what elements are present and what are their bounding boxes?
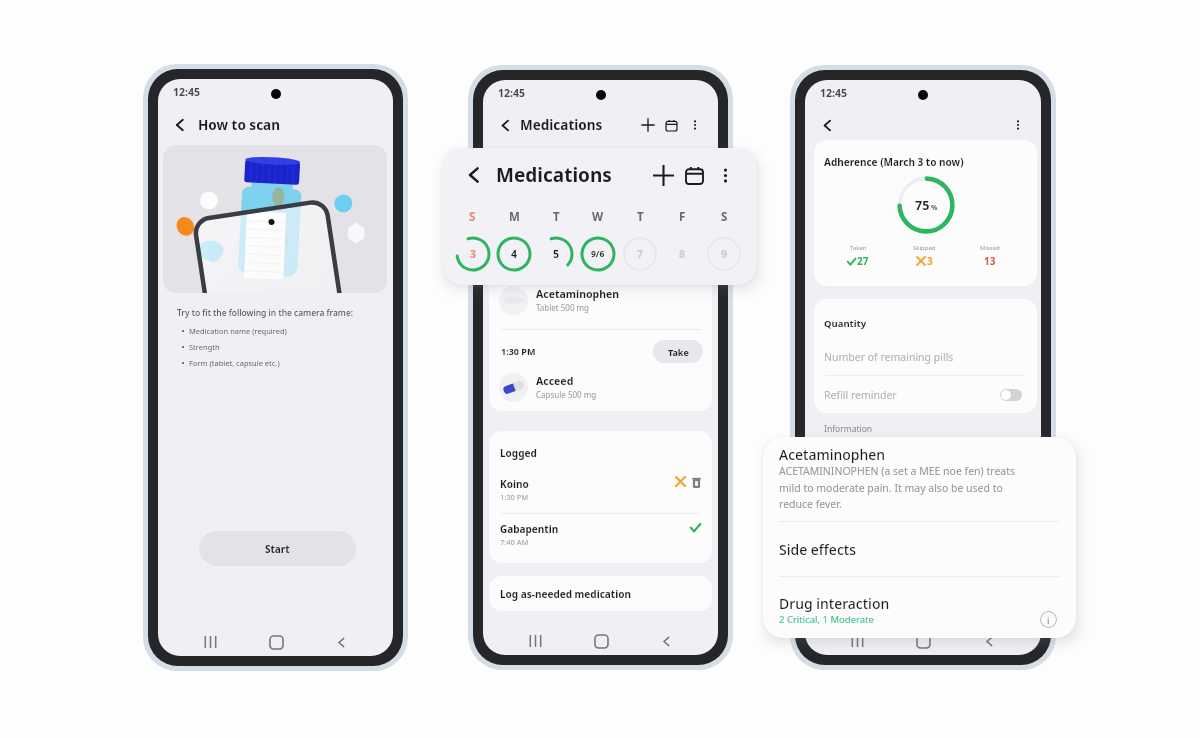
staticText: Taken bbox=[850, 244, 867, 252]
staticText: S bbox=[469, 209, 476, 223]
button[interactable]: Back bbox=[975, 632, 1003, 650]
staticText: 4 bbox=[511, 247, 518, 261]
button[interactable]: Add medication bbox=[654, 166, 673, 185]
staticText: Medications bbox=[520, 116, 603, 134]
staticText: Form (tablet, capsule etc.) bbox=[189, 358, 280, 368]
staticText: T bbox=[553, 209, 560, 223]
staticText: F bbox=[679, 209, 686, 223]
staticText: 27 bbox=[857, 254, 869, 268]
staticText: T bbox=[637, 209, 644, 223]
button[interactable]: Back bbox=[327, 633, 355, 651]
button[interactable]: Recents bbox=[521, 632, 549, 650]
staticText: 7 bbox=[637, 247, 644, 261]
button[interactable]: Back bbox=[465, 166, 483, 184]
staticText: Logged bbox=[500, 446, 537, 460]
button[interactable]: 4 bbox=[496, 236, 532, 272]
button[interactable]: Back bbox=[821, 119, 834, 132]
staticText: 5 bbox=[553, 247, 560, 261]
staticText: 12:45 bbox=[820, 86, 847, 100]
staticText: 75 bbox=[915, 197, 930, 214]
staticText: 13 bbox=[984, 254, 996, 268]
staticText: Acetaminophen bbox=[536, 287, 620, 301]
button[interactable]: Calendar bbox=[666, 120, 677, 131]
button[interactable]: Calendar bbox=[686, 167, 703, 184]
button[interactable]: Start bbox=[199, 531, 356, 566]
staticText: Start bbox=[265, 542, 290, 556]
staticText: Quantity bbox=[824, 317, 867, 330]
staticText: 12:45 bbox=[173, 85, 200, 99]
staticText: S bbox=[721, 209, 728, 223]
staticText: 3 bbox=[470, 247, 477, 261]
button[interactable]: Home bbox=[262, 633, 290, 651]
button[interactable]: 9 bbox=[706, 236, 742, 272]
staticText: Log as-needed medication bbox=[500, 587, 631, 601]
staticText: Missed bbox=[980, 244, 1000, 252]
staticText: Adherence (March 3 to now) bbox=[824, 155, 964, 169]
staticText: Refill reminder bbox=[824, 388, 897, 402]
button[interactable]: More options bbox=[718, 168, 733, 183]
staticText: 8 bbox=[679, 247, 686, 261]
staticText: 12:45 bbox=[498, 86, 525, 100]
button[interactable]: Back bbox=[499, 119, 512, 132]
button[interactable]: 3 bbox=[455, 236, 491, 272]
button[interactable]: 9/6 bbox=[580, 236, 616, 272]
staticText: ACETAMININOPHEN (a set a MEE noe fen) tr… bbox=[779, 464, 1016, 511]
other: Info bbox=[1040, 611, 1057, 628]
staticText: Try to fit the following in the camera f… bbox=[177, 307, 354, 319]
staticText: Capsule 500 mg bbox=[536, 389, 597, 400]
button[interactable]: Drug interaction bbox=[763, 590, 1076, 632]
button[interactable]: Home bbox=[587, 632, 615, 650]
button[interactable]: Refill reminder bbox=[824, 384, 1022, 406]
button[interactable]: Log as-needed medication bbox=[489, 576, 712, 611]
button[interactable]: Take bbox=[653, 340, 703, 363]
button[interactable]: More options bbox=[1013, 120, 1023, 130]
button[interactable]: Recents bbox=[843, 632, 871, 650]
staticText: 1:30 PM bbox=[501, 345, 536, 357]
staticText: Acceed bbox=[536, 374, 574, 388]
staticText: Take bbox=[668, 346, 689, 358]
button[interactable]: 7 bbox=[622, 236, 658, 272]
staticText: Koino bbox=[500, 477, 529, 491]
staticText: 9/6 bbox=[591, 248, 605, 260]
staticText: Acetaminophen bbox=[779, 445, 886, 464]
staticText: i bbox=[1047, 614, 1050, 626]
staticText: 9 bbox=[721, 247, 728, 261]
button[interactable]: 5 bbox=[538, 236, 574, 272]
staticText: Gabapentin bbox=[500, 522, 559, 536]
button[interactable]: Side effects bbox=[763, 536, 1076, 564]
staticText: Drug interaction bbox=[779, 594, 890, 613]
staticText: How to scan bbox=[198, 116, 280, 134]
staticText: Medication name (required) bbox=[189, 326, 287, 336]
staticText: 3 bbox=[927, 254, 933, 268]
button[interactable]: More options bbox=[690, 120, 700, 130]
button[interactable]: How to scan bbox=[158, 112, 393, 137]
staticText: Medications bbox=[496, 162, 612, 188]
staticText: W bbox=[592, 209, 604, 223]
staticText: Side effects bbox=[779, 540, 856, 559]
button[interactable]: Recents bbox=[196, 633, 224, 651]
staticText: % bbox=[931, 203, 938, 213]
button[interactable]: Acetaminophen bbox=[499, 283, 702, 317]
staticText: Skipped bbox=[913, 244, 936, 252]
staticText: M bbox=[509, 209, 520, 223]
staticText: 1:30 PM bbox=[500, 492, 529, 502]
staticText: Number of remaining pills bbox=[824, 350, 954, 364]
button[interactable]: Add medication bbox=[642, 119, 654, 131]
button[interactable]: 8 bbox=[664, 236, 700, 272]
button[interactable]: Back bbox=[652, 632, 680, 650]
staticText: 2 Critical, 1 Moderate bbox=[779, 613, 874, 626]
button[interactable]: Acceed bbox=[499, 370, 702, 404]
staticText: Tablet 500 mg bbox=[536, 302, 589, 313]
button[interactable]: Home bbox=[909, 632, 937, 650]
staticText: 7:40 AM bbox=[500, 537, 529, 547]
staticText: Information bbox=[824, 423, 873, 435]
staticText: Strength bbox=[189, 342, 220, 352]
